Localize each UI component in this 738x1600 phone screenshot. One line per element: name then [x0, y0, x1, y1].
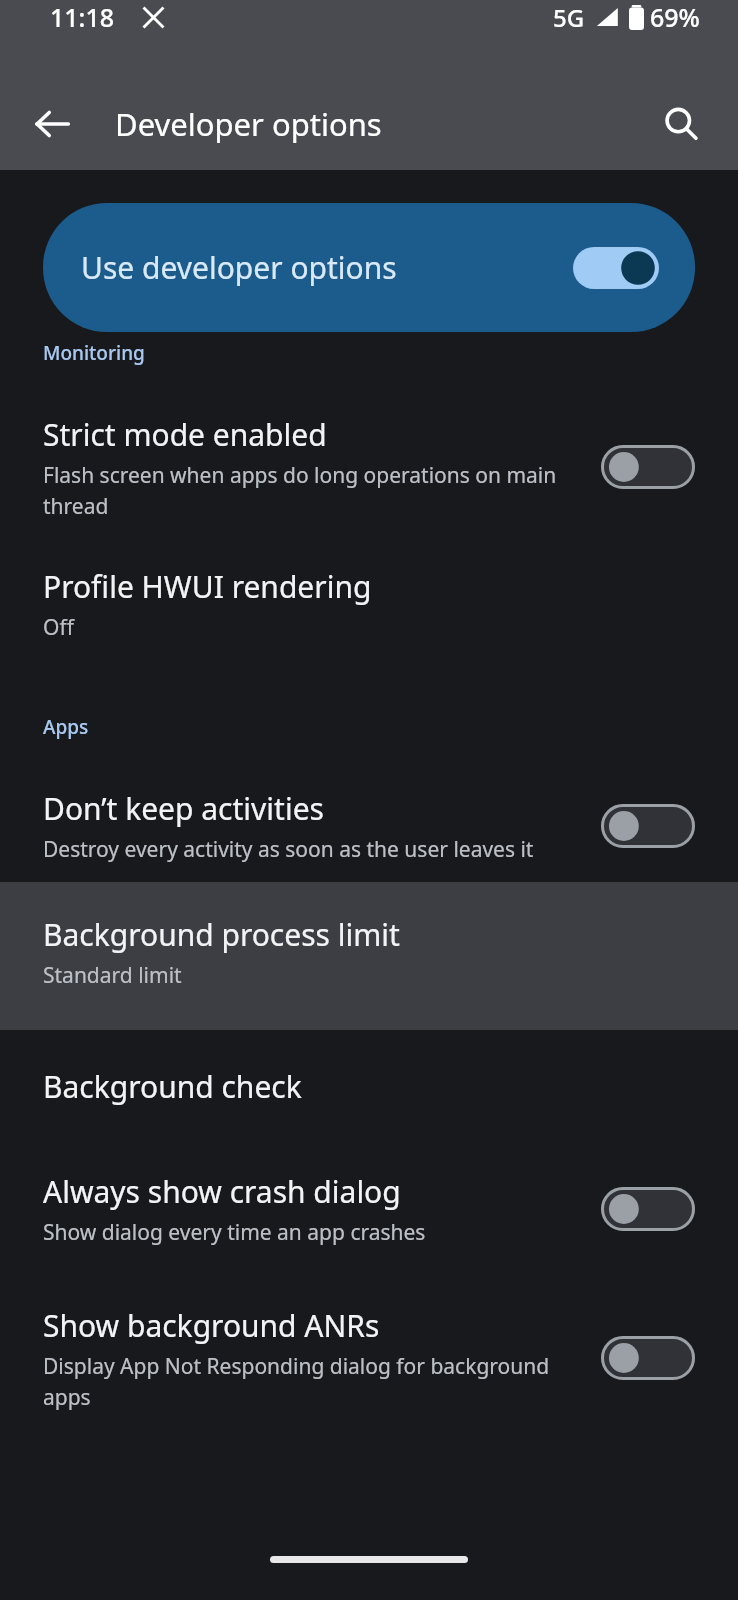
- button[interactable]: Always show crash dialog toggle, off: [601, 1187, 695, 1231]
- staticText: Background check: [43, 1066, 302, 1107]
- staticText: 69%: [650, 0, 700, 34]
- button[interactable]: Back: [17, 89, 87, 159]
- staticText: Standard limit: [43, 961, 182, 990]
- staticText: Show dialog every time an app crashes: [43, 1218, 426, 1247]
- staticText: 11:18: [50, 0, 115, 34]
- button[interactable]: Don’t keep activities toggle, off: [601, 804, 695, 848]
- button[interactable]: Search: [646, 89, 716, 159]
- staticText: Strict mode enabled: [43, 414, 327, 455]
- staticText: Profile HWUI rendering: [43, 566, 372, 607]
- staticText: Show background ANRs: [43, 1305, 380, 1346]
- staticText: Developer options: [115, 103, 382, 145]
- staticText: Always show crash dialog: [43, 1171, 401, 1212]
- button[interactable]: Profile HWUI rendering: [0, 528, 738, 652]
- button[interactable]: Background process limit: [0, 882, 738, 1030]
- staticText: Flash screen when apps do long operation…: [43, 461, 583, 520]
- button[interactable]: Use developer options toggle, on: [573, 247, 659, 289]
- staticText: Off: [43, 613, 74, 642]
- staticText: 5G: [553, 1, 585, 34]
- button[interactable]: Strict mode enabled toggle, off: [601, 445, 695, 489]
- button[interactable]: Use developer options: [43, 203, 695, 332]
- staticText: Apps: [43, 714, 89, 740]
- button[interactable]: Show background ANRs toggle, off: [601, 1336, 695, 1380]
- staticText: Background process limit: [43, 914, 400, 955]
- button[interactable]: Background check: [0, 1030, 738, 1129]
- staticText: Use developer options: [81, 247, 573, 288]
- button[interactable]: Show background ANRs: [0, 1265, 738, 1421]
- staticText: Don’t keep activities: [43, 788, 324, 829]
- staticText: Monitoring: [43, 340, 145, 366]
- button[interactable]: Strict mode enabled: [0, 366, 738, 528]
- button[interactable]: Don’t keep activities: [0, 740, 738, 882]
- staticText: Destroy every activity as soon as the us…: [43, 835, 534, 864]
- button[interactable]: Always show crash dialog: [0, 1129, 738, 1265]
- staticText: Display App Not Responding dialog for ba…: [43, 1352, 583, 1411]
